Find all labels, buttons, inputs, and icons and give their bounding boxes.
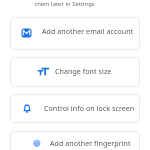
staticText: Change font size xyxy=(55,66,112,76)
button[interactable] xyxy=(10,94,140,123)
staticText: Control info on lock screen xyxy=(44,103,135,113)
button[interactable] xyxy=(10,57,140,87)
staticText: Add another email account xyxy=(42,26,134,36)
staticText: them later in Settings xyxy=(35,0,95,8)
button[interactable] xyxy=(10,17,140,50)
button[interactable] xyxy=(10,131,140,150)
staticText: Add another fingerprint xyxy=(50,138,131,148)
